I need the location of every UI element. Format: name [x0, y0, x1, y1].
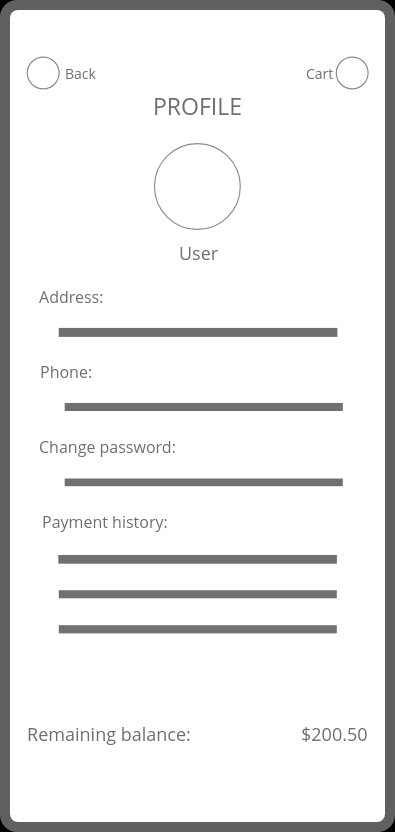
- staticText: PROFILE: [153, 90, 242, 121]
- staticText: Change password:: [39, 436, 176, 458]
- button[interactable]: Back: [26, 55, 98, 91]
- button[interactable]: Profile photo: [153, 142, 243, 232]
- staticText: Remaining balance:: [27, 722, 191, 747]
- button[interactable]: Phone: [30, 359, 350, 417]
- button[interactable]: Payment history: [30, 509, 350, 639]
- staticText: $200.50: [301, 722, 368, 747]
- button[interactable]: Change password: [30, 434, 350, 492]
- button[interactable]: Cart: [303, 55, 371, 91]
- staticText: Phone:: [40, 361, 93, 383]
- staticText: Payment history:: [42, 511, 168, 533]
- staticText: User: [179, 241, 219, 266]
- staticText: Cart: [306, 64, 334, 83]
- staticText: Address:: [39, 286, 104, 308]
- staticText: Back: [65, 64, 96, 83]
- button[interactable]: Address: [30, 284, 350, 342]
